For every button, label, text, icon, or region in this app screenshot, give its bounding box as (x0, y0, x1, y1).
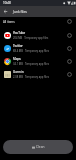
button[interactable]: Garmin (0, 68, 76, 81)
staticText: 88.4 MB Temporary app files (13, 49, 49, 53)
staticText: 204 MB Temporary app files (13, 36, 49, 40)
button[interactable]: Select (65, 57, 74, 66)
button[interactable]: Select (65, 17, 74, 26)
staticText: 10:48 (3, 1, 11, 5)
button[interactable]: Select (65, 70, 74, 79)
button[interactable]: Clean (3, 140, 73, 154)
staticText: Garmin (13, 70, 24, 74)
button[interactable]: YouTube (0, 29, 76, 42)
staticText: Maps (13, 57, 21, 61)
staticText: YouTube (13, 31, 26, 35)
button[interactable]: Back (1, 7, 10, 16)
staticText: 34.1 MB Temporary app files (13, 62, 49, 66)
staticText: Junk files (13, 9, 27, 13)
staticText: 2.08 MB Temporary app files (13, 75, 49, 79)
staticText: Twitter (13, 44, 23, 48)
staticText: All items (3, 20, 15, 24)
staticText: Clean (36, 145, 45, 149)
button[interactable]: Twitter (0, 42, 76, 55)
button[interactable]: Select (65, 31, 74, 40)
button[interactable]: Select (65, 44, 74, 53)
button[interactable]: Maps (0, 55, 76, 68)
